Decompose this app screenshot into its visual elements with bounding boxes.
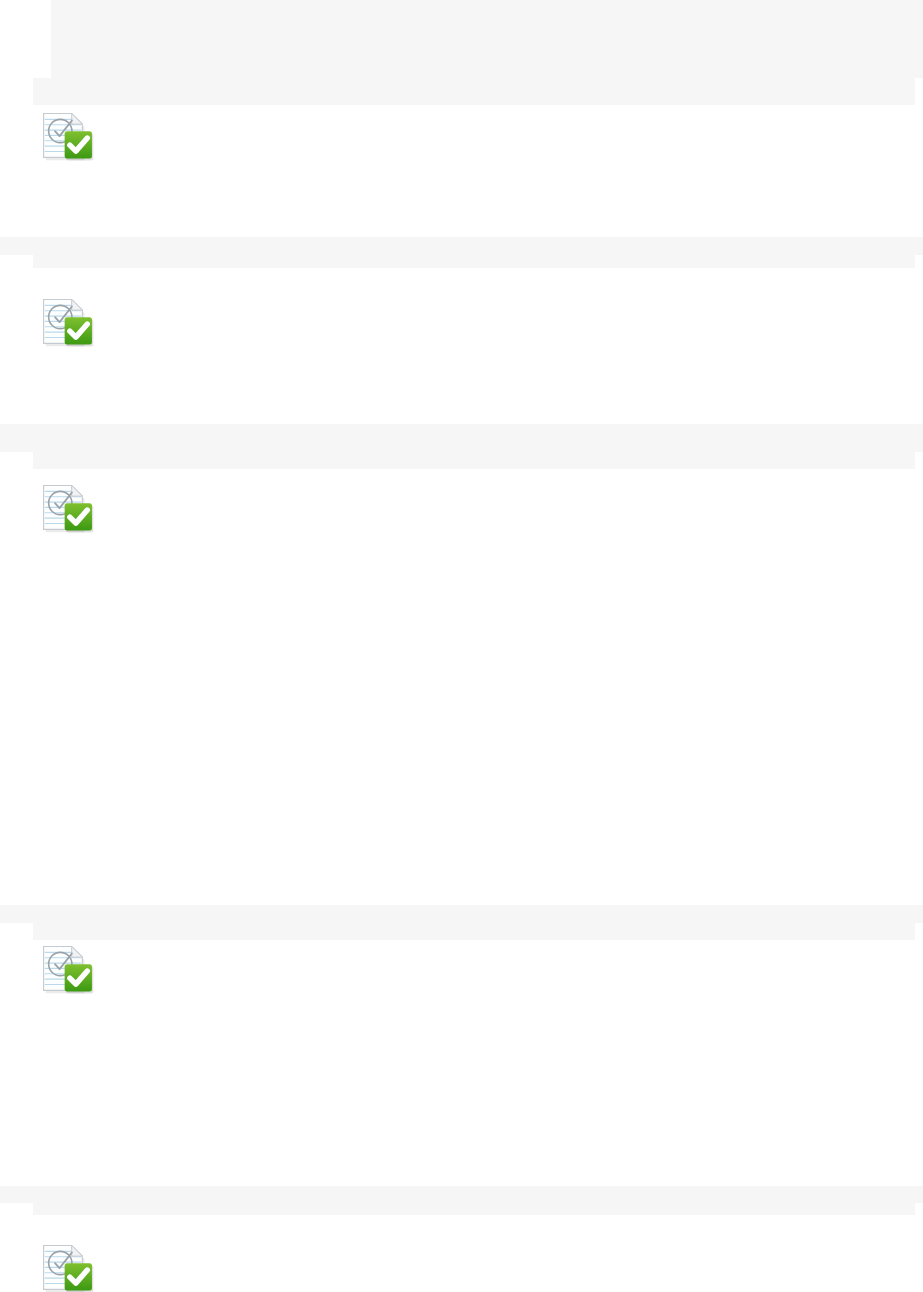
button[interactable]: Approved result document [41, 1243, 93, 1292]
button[interactable]: Approved result document [41, 111, 93, 160]
button[interactable]: Approved result document [41, 297, 93, 346]
button[interactable]: Approved result document [41, 483, 93, 532]
button[interactable]: Approved result document [41, 944, 93, 993]
